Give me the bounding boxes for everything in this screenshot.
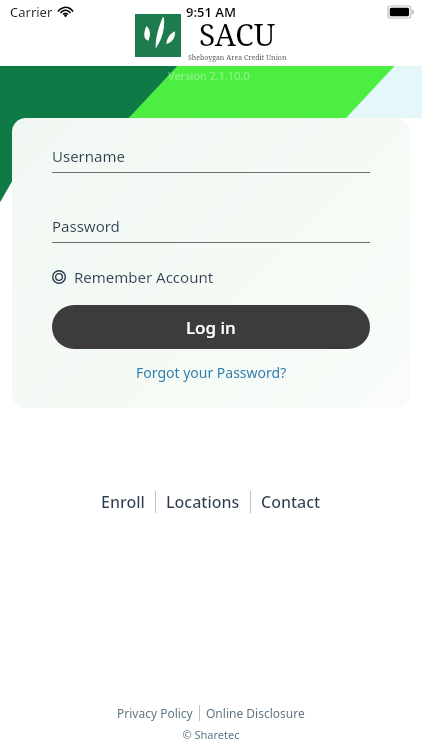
button[interactable]: Remember account toggle — [52, 263, 214, 291]
staticText: Version 2.1.10.0 — [168, 68, 250, 83]
button[interactable]: Username — [52, 146, 370, 173]
button[interactable]: Online Disclosure — [200, 703, 311, 723]
staticText: Carrier — [10, 3, 53, 21]
button[interactable]: Password — [52, 216, 370, 243]
staticText: Username — [52, 146, 125, 166]
staticText: Password — [52, 216, 120, 236]
button[interactable]: Log in — [52, 305, 370, 349]
button[interactable]: Contact — [251, 487, 331, 517]
other: Remember account toggle — [52, 270, 66, 284]
staticText: 9:51 AM — [186, 3, 237, 21]
staticText: SACU — [199, 14, 276, 55]
staticText: Log in — [186, 316, 236, 339]
staticText: Sheboygan Area Credit Union — [188, 53, 287, 63]
staticText: © Sharetec — [182, 727, 240, 742]
button[interactable]: Privacy Policy — [111, 703, 199, 723]
button[interactable]: Enroll — [91, 487, 155, 517]
button[interactable]: Forgot your Password? — [130, 361, 293, 384]
staticText: Remember Account — [74, 267, 214, 287]
button[interactable]: Locations — [156, 487, 250, 517]
